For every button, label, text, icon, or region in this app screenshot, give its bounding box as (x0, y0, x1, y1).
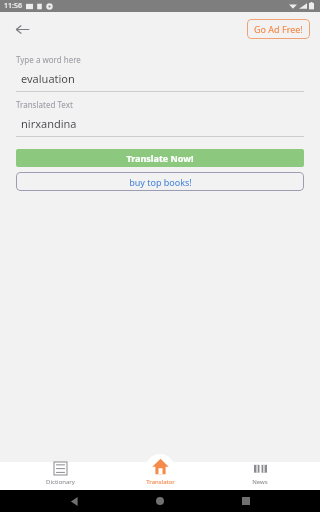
staticText: Translator (146, 478, 175, 486)
staticText: evaluation (21, 71, 75, 86)
button[interactable]: Recents (234, 490, 258, 512)
staticText: nirxandina (21, 116, 77, 131)
button[interactable]: nirxandina (16, 116, 304, 131)
button[interactable]: Home (148, 490, 172, 512)
button[interactable]: Dictionary (20, 462, 100, 490)
button[interactable]: evaluation (16, 71, 304, 86)
staticText: Translated Text (16, 99, 73, 110)
button[interactable]: Translator (152, 458, 169, 475)
staticText: News (252, 478, 268, 486)
staticText: Go Ad Free! (254, 23, 303, 35)
staticText: Translate Now! (126, 152, 194, 164)
staticText: Dictionary (46, 478, 75, 486)
button[interactable]: Translator (120, 459, 200, 490)
button[interactable]: Back (62, 490, 86, 512)
staticText: 11:56 (4, 1, 22, 11)
button[interactable]: Back (8, 15, 36, 43)
button[interactable]: Translate Now! (16, 149, 304, 167)
staticText: Type a word here (16, 54, 81, 65)
staticText: buy top books! (129, 176, 192, 188)
button[interactable]: buy top books! (16, 172, 304, 191)
button[interactable]: News (220, 462, 300, 490)
button[interactable]: Go Ad Free! (247, 19, 310, 39)
